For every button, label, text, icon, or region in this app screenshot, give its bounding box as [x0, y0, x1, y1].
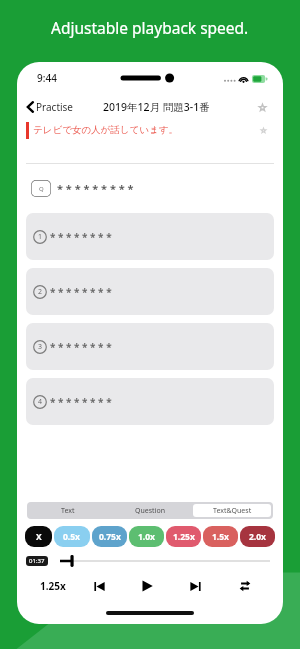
staticText: 1.25x — [40, 579, 66, 593]
button[interactable]: 1.0x — [129, 526, 164, 547]
button[interactable]: 1.25x — [166, 526, 201, 547]
staticText: * * * * * * * * — [50, 230, 112, 244]
staticText: * * * * * * * * * — [57, 181, 134, 196]
button[interactable]: 2 — [26, 268, 274, 315]
staticText: Text&Quest — [213, 506, 252, 516]
button[interactable]: 1.5x — [203, 526, 238, 547]
button[interactable]: Next — [171, 573, 220, 599]
button[interactable]: Text — [29, 504, 107, 517]
button[interactable]: 1 — [26, 213, 274, 260]
staticText: 0.75x — [99, 531, 121, 543]
staticText: 3 — [38, 342, 43, 352]
button[interactable]: 4 — [26, 378, 274, 425]
staticText: Practise — [36, 100, 74, 114]
staticText: 01:37 — [29, 557, 45, 565]
button[interactable]: Play — [123, 573, 171, 599]
staticText: 0.5x — [63, 531, 81, 543]
button[interactable]: 0.5x — [54, 526, 90, 547]
staticText: テレビで女の人が話しています。 — [33, 124, 178, 136]
staticText: 2019年12月 問題3-1番 — [103, 100, 210, 114]
button[interactable]: Bookmark prompt — [254, 121, 272, 139]
staticText: * * * * * * * * — [50, 395, 112, 409]
staticText: 1.25x — [173, 531, 195, 543]
staticText: * * * * * * * * — [50, 285, 112, 299]
button[interactable]: Previous — [75, 573, 123, 599]
button[interactable]: Repeat — [220, 573, 269, 599]
button[interactable]: X — [25, 526, 52, 547]
staticText: Text — [61, 506, 75, 516]
staticText: * * * * * * * * — [50, 340, 112, 354]
button[interactable]: Text&Quest — [193, 504, 271, 517]
staticText: Q — [39, 185, 44, 193]
button[interactable]: 0.75x — [92, 526, 127, 547]
staticText: Question — [135, 506, 165, 516]
button[interactable]: 2.0x — [240, 526, 275, 547]
button[interactable]: 3 — [26, 323, 274, 370]
button[interactable]: 1.25x — [31, 573, 75, 599]
button[interactable]: Q — [31, 180, 283, 197]
staticText: 2.0x — [249, 531, 267, 543]
staticText: 1.0x — [138, 531, 156, 543]
staticText: 2 — [38, 287, 43, 297]
staticText: 1.5x — [212, 531, 230, 543]
staticText: 1 — [38, 232, 43, 242]
staticText: 4 — [38, 397, 43, 407]
staticText: Adjustable playback speed. — [51, 17, 249, 38]
button[interactable]: Favourite — [251, 96, 273, 118]
staticText: 9:44 — [37, 71, 57, 85]
button[interactable]: Practise — [25, 100, 74, 114]
button[interactable]: Question — [111, 504, 189, 517]
staticText: X — [36, 531, 42, 543]
